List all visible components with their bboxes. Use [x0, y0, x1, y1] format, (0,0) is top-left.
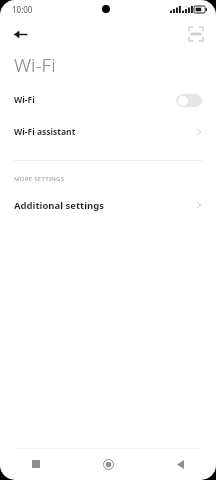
button[interactable]: Scan QR code [182, 20, 210, 48]
button[interactable]: Wi-Fi [0, 85, 216, 115]
button[interactable]: Home [72, 448, 144, 480]
staticText: Wi-Fi [14, 94, 176, 106]
button[interactable]: Recents [0, 448, 72, 480]
button[interactable]: Back [144, 448, 216, 480]
button[interactable]: Additional settings [0, 193, 216, 217]
button[interactable]: Back [6, 20, 34, 48]
button[interactable]: Wi-Fi toggle [176, 94, 202, 107]
button[interactable]: Wi-Fi assistant [0, 117, 216, 147]
staticText: Wi-Fi [14, 52, 56, 78]
staticText: MORE SETTINGS [14, 175, 65, 183]
staticText: Wi-Fi assistant [14, 126, 196, 138]
staticText: Additional settings [14, 199, 196, 212]
staticText: 10:00 [12, 4, 33, 15]
